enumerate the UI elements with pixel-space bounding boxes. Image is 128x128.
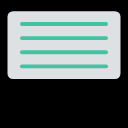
button[interactable]: Open note [8, 11, 121, 79]
